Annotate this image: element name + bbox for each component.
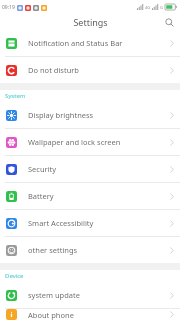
staticText: Wallpaper and lock screen bbox=[28, 137, 121, 147]
staticText: Security bbox=[28, 164, 57, 174]
button[interactable]: Display brightness bbox=[0, 102, 180, 128]
staticText: Notification and Status Bar bbox=[28, 38, 123, 48]
staticText: 09:19 bbox=[2, 4, 15, 11]
staticText: About phone bbox=[28, 310, 74, 320]
button[interactable]: Smart Accessibility bbox=[0, 210, 180, 236]
button[interactable]: Search bbox=[162, 15, 176, 29]
button[interactable]: system update bbox=[0, 282, 180, 308]
staticText: Smart Accessibility bbox=[28, 218, 94, 228]
staticText: Battery bbox=[28, 191, 54, 201]
button[interactable]: Wallpaper and lock screen bbox=[0, 129, 180, 155]
staticText: Display brightness bbox=[28, 110, 94, 120]
staticText: system update bbox=[28, 290, 80, 300]
button[interactable]: Notification and Status Bar bbox=[0, 30, 180, 56]
button[interactable]: other settings bbox=[0, 237, 180, 263]
staticText: Device bbox=[5, 272, 24, 280]
staticText: G bbox=[160, 5, 163, 10]
button[interactable]: Do not disturb bbox=[0, 57, 180, 83]
button[interactable]: About phone bbox=[0, 309, 180, 320]
staticText: other settings bbox=[28, 245, 78, 255]
staticText: 4G bbox=[145, 5, 151, 10]
staticText: Settings bbox=[73, 16, 108, 28]
staticText: Do not disturb bbox=[28, 65, 79, 75]
staticText: System bbox=[5, 92, 26, 100]
button[interactable]: Battery bbox=[0, 183, 180, 209]
button[interactable]: Security bbox=[0, 156, 180, 182]
